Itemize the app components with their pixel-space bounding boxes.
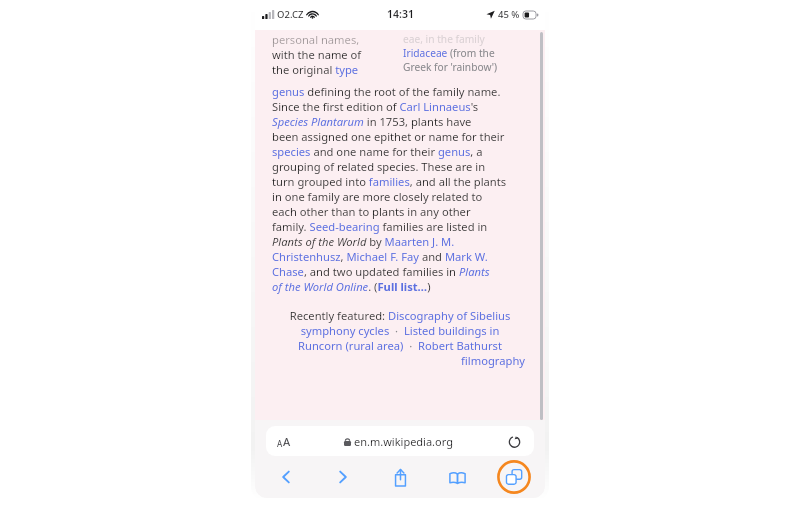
button[interactable]: Back (269, 460, 303, 494)
staticText: Chase, and two updated families in Plant… (272, 264, 528, 279)
staticText: species and one name for their genus, a (272, 144, 528, 159)
staticText: filmography (275, 353, 525, 368)
staticText: in one family are more closely related t… (272, 189, 528, 204)
staticText: genus defining the root of the family na… (272, 84, 528, 99)
button[interactable]: Text size options (266, 426, 534, 456)
staticText: Runcorn (rural area) · Robert Bathurst (275, 338, 525, 353)
staticText: symphony cycles · Listed buildings in (275, 323, 525, 338)
button[interactable]: Forward (326, 460, 360, 494)
staticText: 14:31 (387, 7, 414, 21)
staticText: en.m.wikipedia.org (354, 434, 453, 449)
staticText: personal names, (272, 32, 360, 47)
staticText: A (283, 434, 291, 449)
staticText: 45 % (498, 8, 520, 21)
button[interactable]: Bookmarks (440, 460, 474, 494)
staticText: O2.CZ (277, 8, 304, 21)
staticText: A (277, 438, 283, 449)
staticText: grouping of related species. These are i… (272, 159, 528, 174)
staticText: Plants of the World by Maarten J. M. (272, 234, 528, 249)
staticText: been assigned one epithet or name for th… (272, 129, 528, 144)
staticText: Recently featured: Discography of Sibeli… (275, 308, 525, 323)
staticText: Christenhusz, Michael F. Fay and Mark W. (272, 249, 528, 264)
staticText: with the name of (272, 47, 362, 62)
staticText: eae, in the family (403, 32, 485, 46)
button[interactable]: Text size options (277, 434, 291, 449)
staticText: the original type (272, 62, 359, 77)
staticText: of the World Online. (Full list…) (272, 279, 528, 294)
staticText: family. Seed-bearing families are listed… (272, 219, 528, 234)
staticText: turn grouped into families, and all the … (272, 174, 528, 189)
staticText: each other than to plants in any other (272, 204, 528, 219)
staticText: Since the first edition of Carl Linnaeus… (272, 99, 528, 114)
button[interactable]: Tabs (497, 460, 531, 494)
button[interactable]: Reload page (506, 433, 522, 449)
button[interactable]: Share (383, 460, 417, 494)
staticText: Species Plantarum in 1753, plants have (272, 114, 528, 129)
staticText: Iridaceae (from the (403, 46, 495, 60)
staticText: Greek for 'rainbow') (403, 60, 498, 74)
